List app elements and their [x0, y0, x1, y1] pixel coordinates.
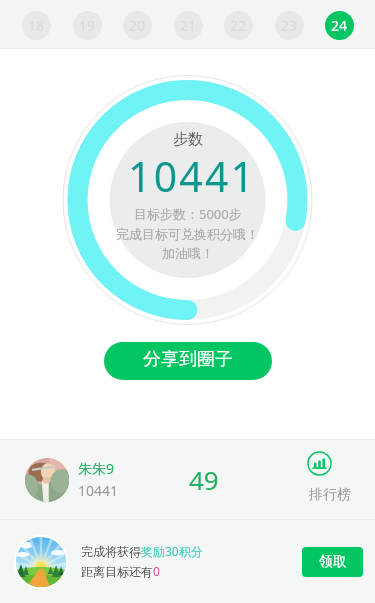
button[interactable]: 分享到圈子: [104, 342, 272, 380]
button[interactable]: 23: [275, 11, 304, 40]
staticText: 22: [230, 16, 247, 35]
staticText: 24: [331, 16, 348, 35]
staticText: 完成目标可兑换积分哦！: [116, 226, 259, 242]
button[interactable]: 20: [123, 11, 152, 40]
button[interactable]: 领取: [302, 547, 363, 577]
button[interactable]: 朱朱9: [0, 440, 375, 519]
staticText: 19: [79, 16, 96, 35]
staticText: 朱朱9: [78, 459, 115, 478]
staticText: 20: [129, 16, 146, 35]
staticText: 10441: [78, 481, 119, 500]
staticText: 排行榜: [309, 486, 351, 504]
staticText: 目标步数：5000步: [134, 205, 242, 223]
button[interactable]: 24: [325, 11, 354, 40]
button[interactable]: 22: [224, 11, 253, 40]
button[interactable]: 18: [22, 11, 51, 40]
staticText: 步数: [173, 130, 203, 149]
staticText: 距离目标还有0: [81, 563, 160, 579]
staticText: 领取: [319, 553, 347, 571]
button[interactable]: 排行榜: [300, 450, 362, 510]
staticText: 21: [180, 16, 197, 35]
staticText: 完成将获得奖励30积分: [81, 543, 203, 559]
staticText: 分享到圈子: [143, 348, 233, 371]
button[interactable]: 21: [174, 11, 203, 40]
staticText: 10441: [128, 148, 257, 204]
staticText: 18: [28, 16, 45, 35]
button[interactable]: 19: [73, 11, 102, 40]
staticText: 49: [189, 462, 219, 497]
staticText: 加油哦！: [162, 245, 214, 261]
staticText: 23: [281, 16, 298, 35]
